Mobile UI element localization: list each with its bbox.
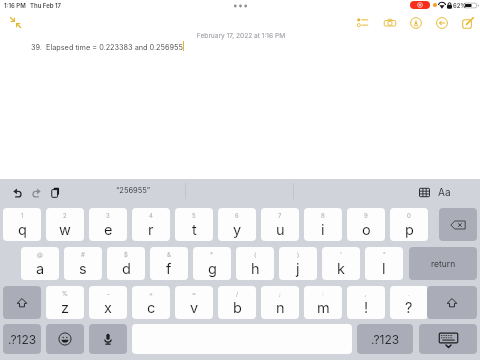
button[interactable]: ' bbox=[322, 247, 360, 280]
staticText: 7 bbox=[278, 212, 282, 219]
button[interactable]: 2 bbox=[46, 208, 84, 241]
staticText: $ bbox=[124, 251, 128, 258]
staticText: ! bbox=[364, 299, 369, 317]
staticText: 1 bbox=[21, 212, 24, 219]
staticText: a bbox=[36, 260, 45, 278]
staticText: d bbox=[122, 260, 131, 278]
button[interactable]: .?123 bbox=[357, 324, 413, 354]
staticText: return bbox=[431, 259, 456, 269]
button[interactable]: 1 bbox=[3, 208, 41, 241]
staticText: .?123 bbox=[371, 332, 400, 347]
staticText: ) bbox=[297, 251, 300, 258]
staticText: - bbox=[107, 290, 110, 297]
button[interactable]: 7 bbox=[261, 208, 299, 241]
button[interactable]: $ bbox=[107, 247, 145, 280]
staticText: ( bbox=[254, 251, 257, 258]
button[interactable]: / bbox=[218, 286, 256, 319]
button[interactable]: .?123 bbox=[3, 324, 41, 354]
staticText: = bbox=[192, 290, 196, 297]
button[interactable]: 8 bbox=[304, 208, 342, 241]
staticText: g bbox=[208, 260, 217, 278]
button[interactable]: Share bbox=[434, 15, 449, 30]
staticText: " bbox=[383, 251, 386, 258]
button[interactable]: Redo bbox=[29, 185, 43, 199]
staticText: # bbox=[81, 251, 85, 258]
staticText: h bbox=[251, 260, 260, 278]
button[interactable]: 3 bbox=[89, 208, 127, 241]
staticText: w bbox=[59, 221, 71, 239]
button[interactable]: Compose bbox=[460, 15, 475, 30]
staticText: + bbox=[149, 290, 153, 297]
staticText: ; bbox=[279, 290, 281, 297]
staticText: c bbox=[147, 299, 156, 317]
staticText: i bbox=[321, 221, 325, 239]
button[interactable]: " bbox=[365, 247, 403, 280]
button[interactable]: % bbox=[46, 286, 84, 319]
button[interactable]: Undo bbox=[10, 185, 24, 199]
button[interactable]: ; bbox=[261, 286, 299, 319]
staticText: .?123 bbox=[8, 332, 37, 347]
staticText: x bbox=[104, 299, 112, 317]
button[interactable]: Screen recording bbox=[410, 1, 430, 9]
staticText: z bbox=[61, 299, 70, 317]
staticText: ? bbox=[405, 299, 413, 317]
staticText: p bbox=[405, 221, 414, 239]
staticText: m bbox=[317, 299, 330, 317]
button[interactable]: Backspace bbox=[439, 208, 477, 241]
staticText: : bbox=[322, 290, 324, 297]
button[interactable]: = bbox=[175, 286, 213, 319]
button[interactable]: Dictate bbox=[89, 324, 127, 354]
button[interactable]: 6 bbox=[218, 208, 256, 241]
staticText: ' bbox=[340, 251, 342, 258]
staticText: n bbox=[276, 299, 285, 317]
button[interactable]: * bbox=[193, 247, 231, 280]
staticText: 6 bbox=[235, 212, 239, 219]
button[interactable]: # bbox=[64, 247, 102, 280]
button[interactable]: & bbox=[150, 247, 188, 280]
button[interactable]: . bbox=[390, 286, 428, 319]
staticText: 39. Elapsed time = 0.223383 and 0.256955 bbox=[31, 43, 183, 52]
button[interactable]: Emoji bbox=[46, 324, 84, 354]
button[interactable]: 4 bbox=[132, 208, 170, 241]
staticText: 4 bbox=[149, 212, 153, 219]
button[interactable]: - bbox=[89, 286, 127, 319]
button[interactable]: 0 bbox=[390, 208, 428, 241]
button[interactable]: Paste bbox=[48, 185, 62, 199]
staticText: j bbox=[296, 260, 300, 278]
staticText: q bbox=[18, 221, 27, 239]
staticText: o bbox=[362, 221, 371, 239]
button[interactable]: Hide keyboard bbox=[419, 324, 477, 354]
button[interactable]: + bbox=[132, 286, 170, 319]
button[interactable]: Checklist bbox=[355, 15, 370, 30]
staticText: 8 bbox=[321, 212, 325, 219]
staticText: r bbox=[148, 221, 154, 239]
button[interactable]: Window controls bbox=[228, 2, 252, 10]
staticText: 0 bbox=[407, 212, 411, 219]
staticText: u bbox=[276, 221, 285, 239]
staticText: t bbox=[192, 221, 197, 239]
staticText: February 17, 2022 at 1:16 PM bbox=[1, 32, 480, 40]
button[interactable]: 5 bbox=[175, 208, 213, 241]
button[interactable]: ) bbox=[279, 247, 317, 280]
staticText: Thu Feb 17 bbox=[30, 2, 61, 9]
staticText: l bbox=[382, 260, 386, 278]
button[interactable]: ( bbox=[236, 247, 274, 280]
button[interactable]: Shift bbox=[427, 286, 477, 319]
button[interactable]: : bbox=[304, 286, 342, 319]
staticText: 5 bbox=[192, 212, 196, 219]
button[interactable]: Collapse bbox=[8, 15, 22, 29]
staticText: 3 bbox=[106, 212, 110, 219]
button[interactable]: return bbox=[409, 247, 477, 280]
button[interactable]: Markup bbox=[408, 15, 423, 30]
button[interactable]: @ bbox=[21, 247, 59, 280]
button[interactable]: 9 bbox=[347, 208, 385, 241]
staticText: k bbox=[337, 260, 345, 278]
button[interactable]: Table bbox=[417, 185, 432, 200]
button[interactable]: Camera bbox=[382, 15, 397, 30]
staticText: y bbox=[233, 221, 242, 239]
button[interactable]: , bbox=[347, 286, 385, 319]
staticText: % bbox=[62, 290, 68, 297]
button[interactable]: Shift bbox=[3, 286, 41, 319]
staticText: 62% bbox=[453, 2, 467, 9]
